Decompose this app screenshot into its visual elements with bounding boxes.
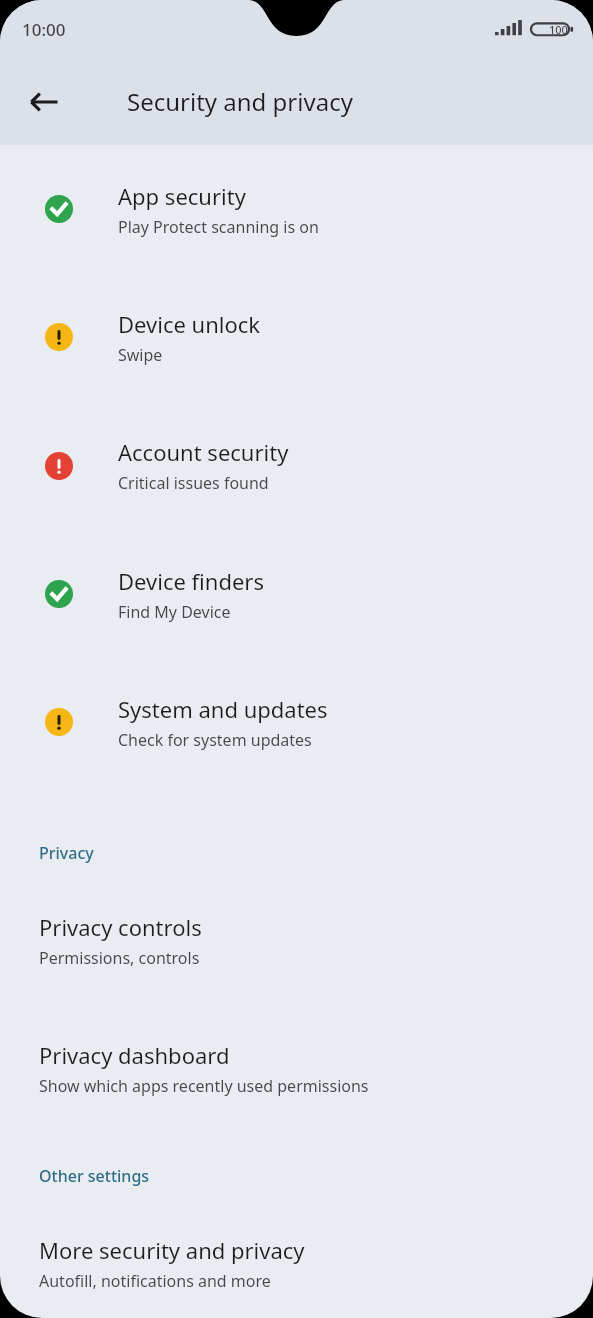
button[interactable]: More security and privacy [0, 1221, 593, 1306]
staticText: Permissions, controls [39, 947, 200, 969]
button[interactable]: Device unlock [0, 273, 593, 401]
staticText: 10:00 [22, 18, 66, 41]
staticText: Find My Device [118, 601, 231, 623]
button[interactable]: System and updates [0, 658, 593, 786]
staticText: Swipe [118, 344, 163, 366]
staticText: Privacy dashboard [39, 1040, 230, 1070]
staticText: Security and privacy [127, 85, 353, 118]
button[interactable]: Account security [0, 401, 593, 530]
staticText: Privacy controls [39, 912, 202, 942]
staticText: Show which apps recently used permission… [39, 1075, 369, 1097]
staticText: Privacy [39, 842, 94, 864]
staticText: Autofill, notifications and more [39, 1270, 271, 1292]
staticText: System and updates [118, 694, 328, 724]
staticText: 100 [549, 22, 568, 37]
staticText: Critical issues found [118, 472, 269, 494]
staticText: Play Protect scanning is on [118, 216, 319, 238]
staticText: More security and privacy [39, 1235, 305, 1265]
staticText: Other settings [39, 1165, 150, 1187]
staticText: Device unlock [118, 309, 261, 339]
button[interactable]: Privacy controls [0, 898, 593, 983]
button[interactable]: Device finders [0, 530, 593, 658]
button[interactable]: Back [16, 74, 72, 130]
staticText: Device finders [118, 566, 264, 596]
staticText: App security [118, 181, 246, 211]
staticText: Account security [118, 437, 289, 467]
button[interactable]: Privacy dashboard [0, 1026, 593, 1111]
button[interactable]: App security [0, 145, 593, 273]
staticText: Check for system updates [118, 729, 312, 751]
